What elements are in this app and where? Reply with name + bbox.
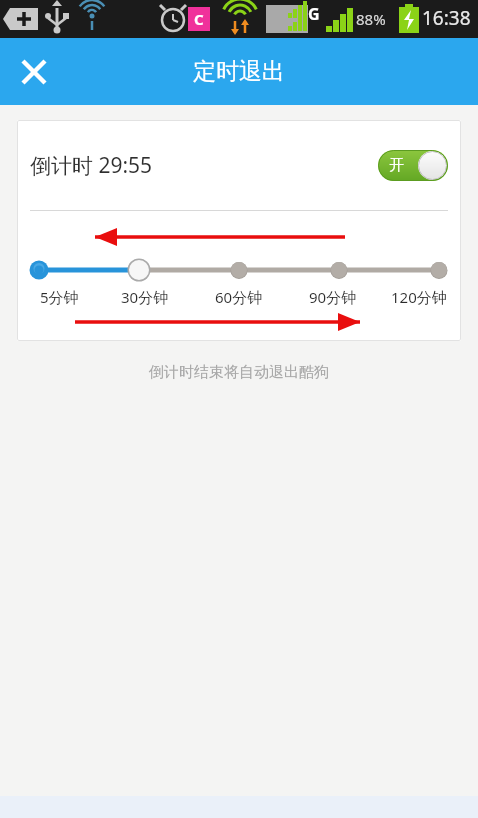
staticText: 16:38	[422, 5, 471, 31]
staticText: 定时退出	[193, 57, 285, 86]
staticText: G	[308, 3, 320, 25]
button[interactable]: 30分钟	[98, 287, 192, 307]
button[interactable]: Countdown on	[378, 150, 448, 181]
button[interactable]: Close	[13, 51, 55, 93]
staticText: C	[194, 9, 204, 29]
staticText: 倒计时 29:55	[30, 151, 153, 180]
staticText: 5分钟	[40, 287, 79, 307]
staticText: 开	[389, 156, 404, 175]
staticText: 倒计时结束将自动退出酷狗	[0, 363, 478, 382]
staticText: 120分钟	[391, 287, 447, 307]
button[interactable]: 5分钟	[21, 287, 98, 307]
button[interactable]: 120分钟	[380, 287, 457, 307]
button[interactable]: 60分钟	[192, 287, 286, 307]
staticText: 30分钟	[121, 287, 169, 307]
staticText: 88%	[356, 9, 386, 29]
staticText: 60分钟	[215, 287, 263, 307]
button[interactable]: 90分钟	[286, 287, 380, 307]
staticText: 90分钟	[309, 287, 357, 307]
